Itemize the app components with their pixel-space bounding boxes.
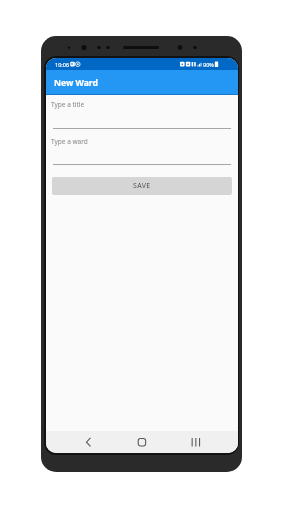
button[interactable]: Type a ward: [46, 133, 238, 166]
button[interactable]: [110, 431, 174, 453]
button[interactable]: SAVE: [52, 177, 232, 195]
button[interactable]: [46, 431, 110, 453]
staticText: Type a title: [51, 100, 85, 109]
staticText: New Ward: [54, 77, 98, 89]
button[interactable]: [174, 431, 238, 453]
button[interactable]: Type a title: [46, 97, 238, 130]
staticText: 90%: [203, 61, 214, 68]
staticText: SAVE: [133, 181, 151, 191]
staticText: Type a ward: [51, 137, 88, 146]
staticText: 10:06: [55, 61, 70, 68]
